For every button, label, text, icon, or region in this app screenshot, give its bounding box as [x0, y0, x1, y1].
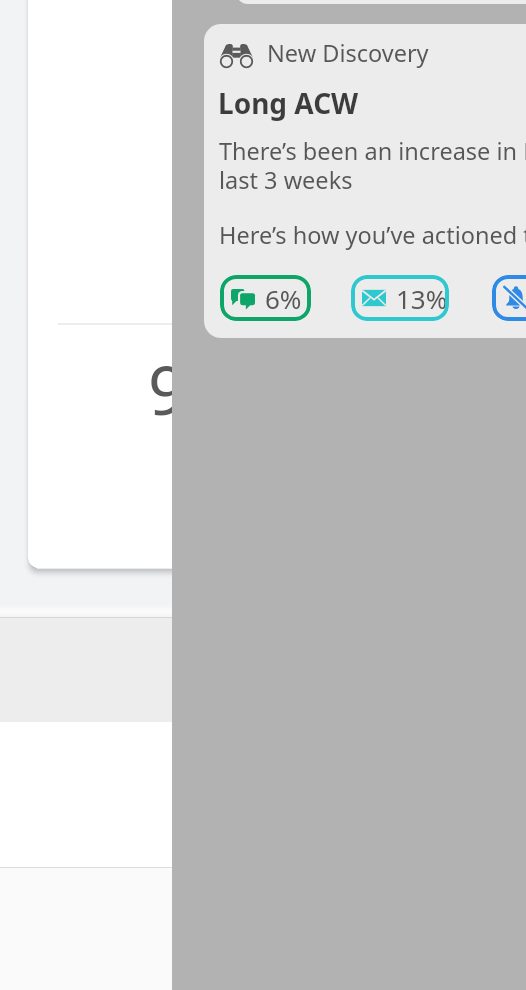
button[interactable]: 13% — [351, 275, 449, 321]
staticText: 13% — [396, 281, 448, 316]
button[interactable]: 6% — [220, 275, 311, 321]
button[interactable]: Notifications off — [492, 275, 526, 321]
button[interactable] — [0, 868, 526, 990]
staticText: 6% — [265, 281, 302, 316]
staticText: Here’s how you’ve actioned this: — [219, 219, 526, 251]
staticText: New Discovery — [267, 37, 429, 69]
button[interactable]: New Discovery — [204, 24, 526, 338]
staticText: last 3 weeks — [219, 164, 353, 196]
button[interactable] — [0, 722, 526, 867]
button[interactable]: 9 — [28, 0, 328, 568]
staticText: There’s been an increase in Long ACW ove… — [219, 135, 526, 167]
other: Notifications off — [503, 285, 526, 311]
staticText: 9 — [148, 343, 187, 434]
button[interactable] — [0, 618, 526, 722]
staticText: Long ACW — [218, 84, 359, 122]
